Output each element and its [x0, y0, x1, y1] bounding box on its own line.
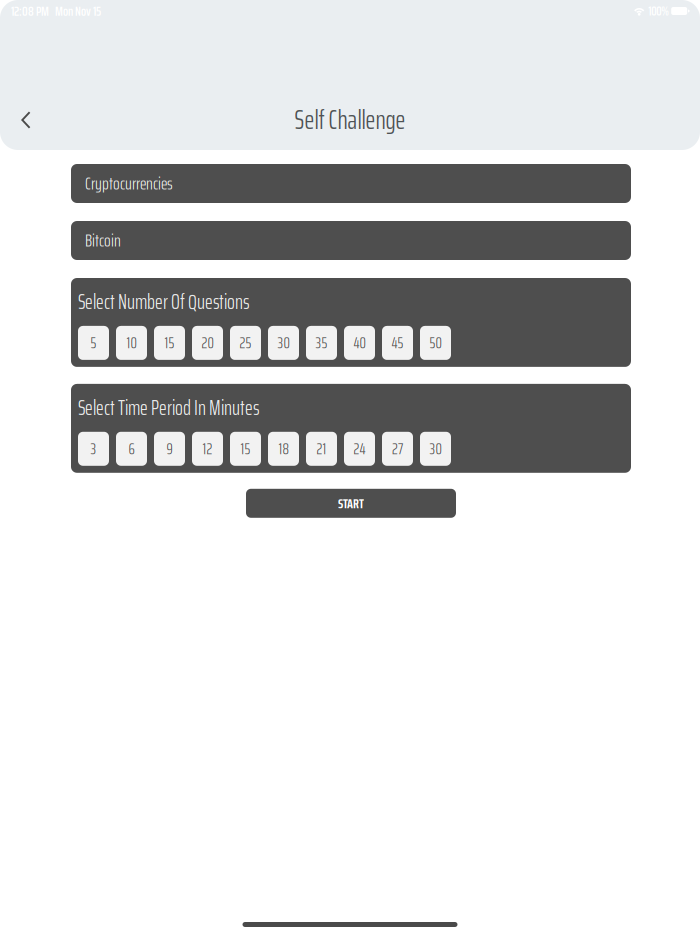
staticText: 45: [391, 331, 403, 355]
button[interactable]: Cryptocurrencies: [71, 164, 631, 203]
staticText: 18: [278, 437, 288, 461]
button[interactable]: 25: [230, 326, 261, 360]
staticText: 15: [164, 331, 174, 355]
button[interactable]: 18: [268, 432, 299, 466]
button[interactable]: 21: [306, 432, 337, 466]
staticText: 50: [429, 331, 441, 355]
button[interactable]: 3: [78, 432, 109, 466]
button[interactable]: 27: [382, 432, 413, 466]
staticText: 12:08 PM: [11, 0, 49, 21]
button[interactable]: 9: [154, 432, 185, 466]
button[interactable]: 10: [116, 326, 147, 360]
staticText: 3: [90, 437, 96, 461]
button[interactable]: 50: [420, 326, 451, 360]
staticText: 5: [90, 331, 96, 355]
staticText: Select Number Of Questions: [78, 286, 250, 318]
button[interactable]: 15: [154, 326, 185, 360]
staticText: 40: [353, 331, 365, 355]
button[interactable]: 45: [382, 326, 413, 360]
button[interactable]: 35: [306, 326, 337, 360]
staticText: 35: [315, 331, 327, 355]
staticText: 9: [166, 437, 172, 461]
staticText: 100%: [648, 1, 669, 21]
staticText: 24: [353, 437, 365, 461]
staticText: Bitcoin: [85, 227, 121, 254]
staticText: 25: [239, 331, 251, 355]
button[interactable]: 12: [192, 432, 223, 466]
staticText: 21: [316, 437, 326, 461]
button[interactable]: 24: [344, 432, 375, 466]
button[interactable]: 15: [230, 432, 261, 466]
button[interactable]: Bitcoin: [71, 221, 631, 260]
button[interactable]: Back: [4, 98, 48, 142]
staticText: 6: [128, 437, 134, 461]
staticText: Cryptocurrencies: [85, 170, 173, 197]
staticText: 27: [392, 437, 403, 461]
staticText: 10: [126, 331, 136, 355]
staticText: Self Challenge: [294, 99, 405, 140]
staticText: Select Time Period In Minutes: [78, 392, 260, 424]
button[interactable]: 6: [116, 432, 147, 466]
button[interactable]: 40: [344, 326, 375, 360]
staticText: START: [338, 492, 364, 514]
staticText: 15: [240, 437, 250, 461]
button[interactable]: START: [246, 489, 456, 518]
staticText: 30: [277, 331, 289, 355]
staticText: 30: [429, 437, 441, 461]
button[interactable]: 30: [268, 326, 299, 360]
button[interactable]: 20: [192, 326, 223, 360]
staticText: 12: [202, 437, 212, 461]
staticText: 20: [201, 331, 213, 355]
button[interactable]: 30: [420, 432, 451, 466]
staticText: Mon Nov 15: [55, 0, 101, 21]
button[interactable]: 5: [78, 326, 109, 360]
